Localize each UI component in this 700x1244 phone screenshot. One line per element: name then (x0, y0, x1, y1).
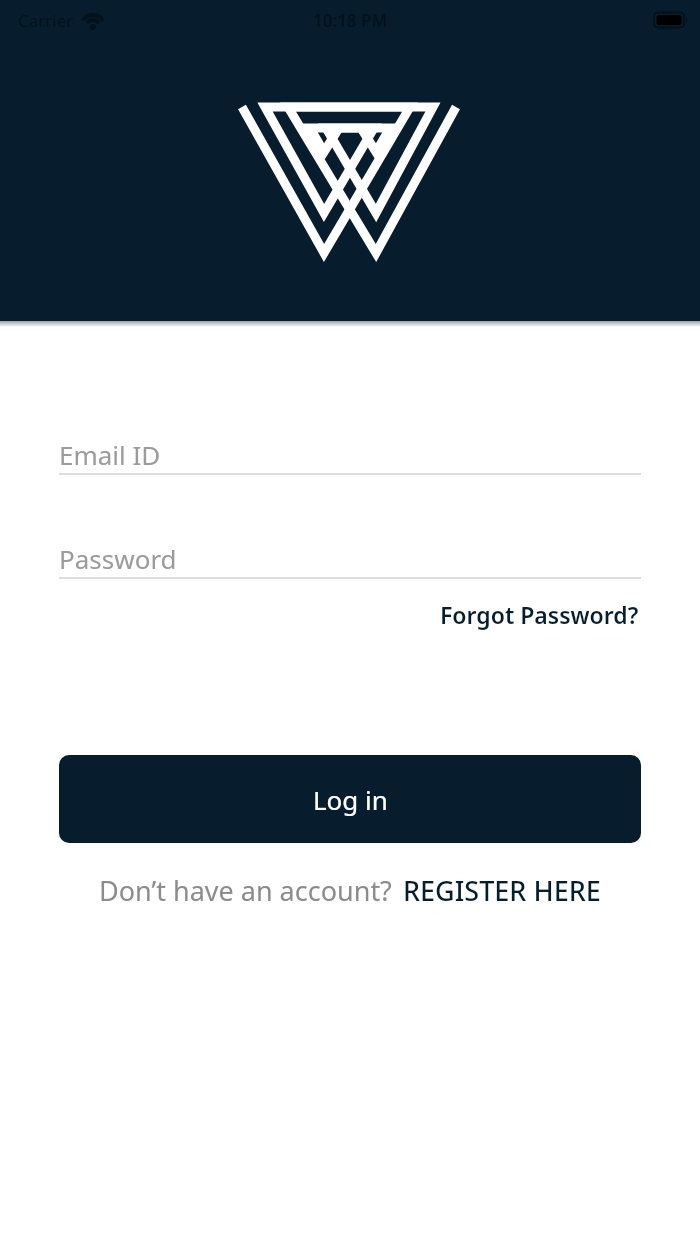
staticText: Email ID (59, 437, 161, 472)
button[interactable]: Forgot Password? (440, 599, 639, 630)
staticText: Carrier (18, 9, 74, 32)
button[interactable]: REGISTER HERE (403, 872, 601, 909)
staticText: Forgot Password? (440, 599, 639, 630)
staticText: Log in (313, 782, 388, 817)
staticText: Password (59, 541, 177, 576)
staticText: Don’t have an account? (99, 872, 392, 909)
staticText: 10:18 PM (313, 9, 388, 32)
button[interactable]: Password (59, 535, 641, 579)
staticText: REGISTER HERE (403, 872, 601, 909)
button[interactable]: Log in (59, 755, 641, 843)
button[interactable]: Email ID (59, 431, 641, 475)
